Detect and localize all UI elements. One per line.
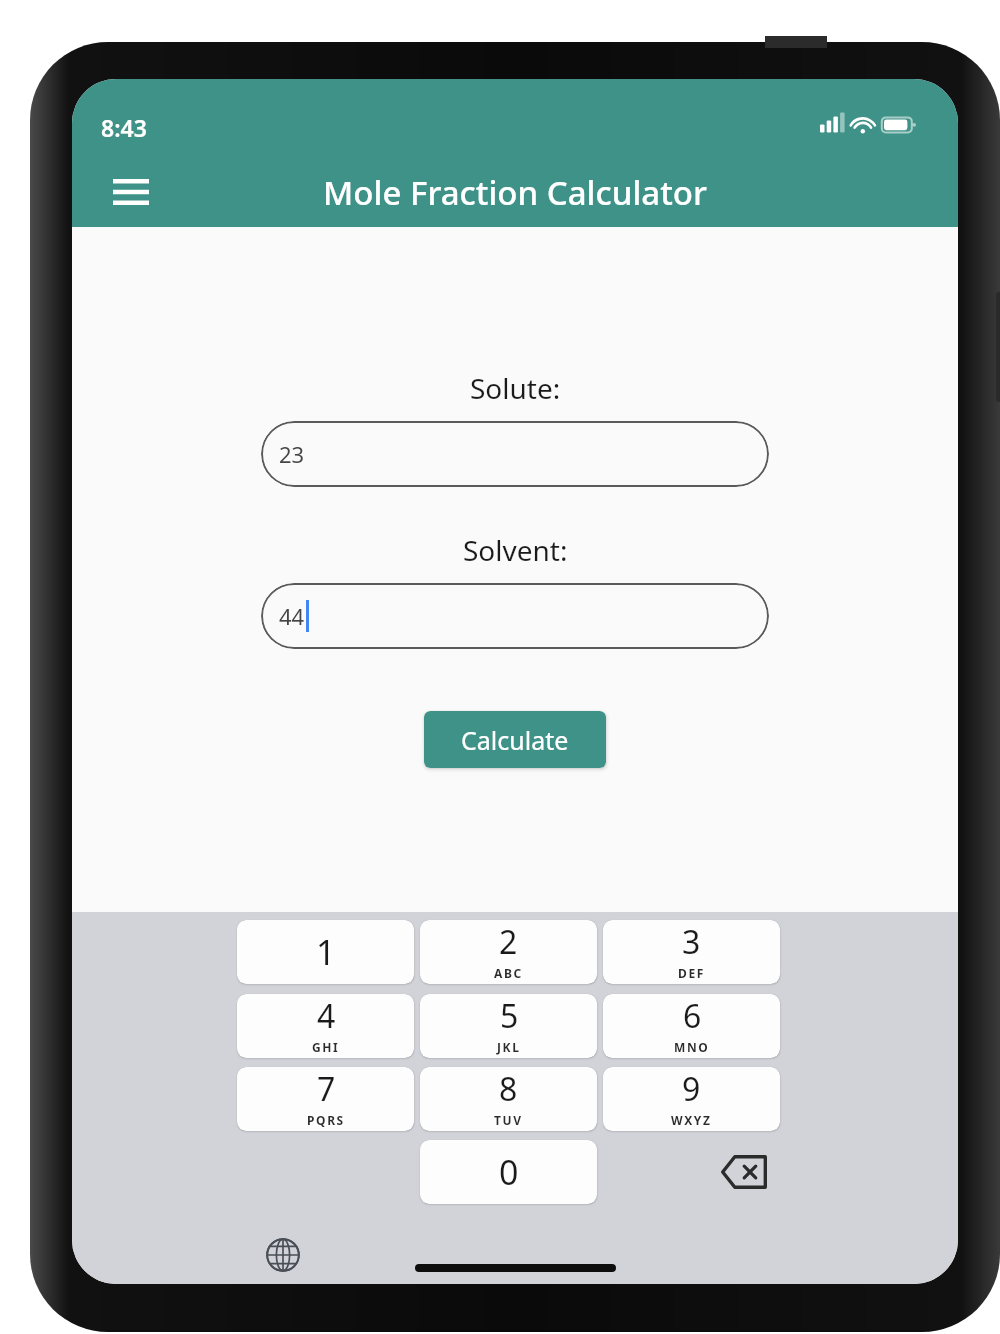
staticText: MNO	[674, 1039, 710, 1055]
button[interactable]: 8	[420, 1067, 597, 1131]
button[interactable]: Open navigation menu	[96, 157, 166, 227]
staticText: 6	[683, 994, 702, 1038]
button[interactable]: 23	[261, 421, 769, 487]
staticText: 8	[499, 1067, 518, 1111]
staticText: 3	[682, 920, 701, 964]
staticText: 0	[499, 1149, 519, 1195]
button[interactable]: 2	[420, 920, 597, 984]
staticText: Solute:	[470, 369, 561, 407]
button[interactable]: 6	[603, 994, 780, 1058]
button[interactable]: 7	[237, 1067, 414, 1131]
button[interactable]: 1	[237, 920, 414, 984]
staticText: Mole Fraction Calculator	[323, 170, 707, 215]
staticText: 4	[317, 994, 336, 1038]
staticText: 23	[279, 439, 305, 469]
button[interactable]: 0	[420, 1140, 597, 1204]
button[interactable]: Switch keyboard language	[250, 1222, 316, 1284]
staticText: GHI	[312, 1039, 340, 1055]
staticText: Solvent:	[463, 531, 568, 569]
staticText: WXYZ	[671, 1112, 712, 1128]
staticText: Calculate	[461, 723, 569, 757]
staticText: 8:43	[101, 112, 147, 143]
staticText: DEF	[678, 965, 705, 981]
button[interactable]: Backspace	[655, 1140, 832, 1204]
button[interactable]: 4	[237, 994, 414, 1058]
staticText: JKL	[497, 1039, 521, 1055]
button[interactable]: 3	[603, 920, 780, 984]
button[interactable]: 5	[420, 994, 597, 1058]
staticText: 44	[279, 601, 305, 631]
button[interactable]: 9	[603, 1067, 780, 1131]
staticText: 2	[499, 920, 518, 964]
staticText: 5	[500, 994, 519, 1038]
staticText: PQRS	[307, 1112, 345, 1128]
staticText: 7	[317, 1067, 336, 1111]
staticText: ABC	[494, 965, 523, 981]
button[interactable]: 44	[261, 583, 769, 649]
staticText: 1	[316, 929, 336, 975]
staticText: TUV	[494, 1112, 523, 1128]
button[interactable]: Calculate	[424, 711, 606, 768]
staticText: 9	[682, 1067, 701, 1111]
